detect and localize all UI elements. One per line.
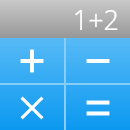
staticText: 1+2 <box>72 1 119 38</box>
button[interactable]: 1+2 <box>0 0 130 38</box>
button[interactable]: Multiply <box>0 85 64 130</box>
button[interactable]: Equals <box>66 85 130 130</box>
button[interactable]: Plus <box>0 38 64 83</box>
button[interactable]: Minus <box>66 38 130 83</box>
